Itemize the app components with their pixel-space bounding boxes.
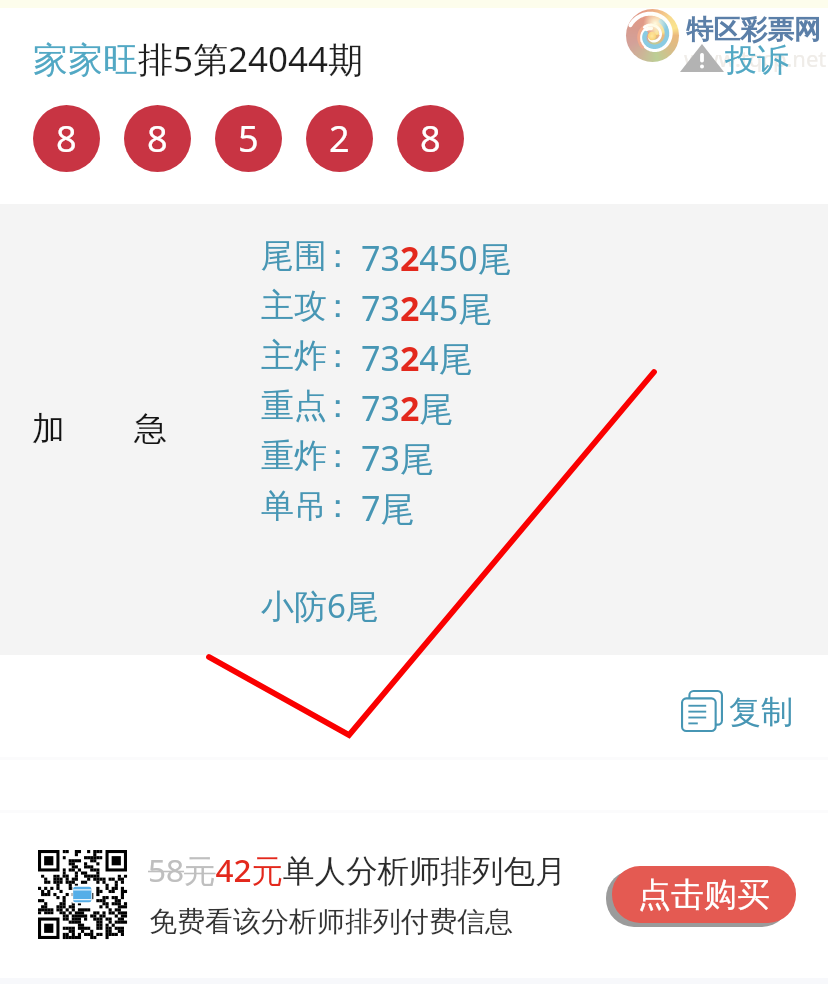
button[interactable]: 2 — [306, 105, 373, 172]
staticText: 5 — [238, 114, 259, 163]
button[interactable]: 8 — [124, 105, 191, 172]
staticText: 投诉 — [725, 40, 789, 78]
staticText: 73尾 — [361, 435, 434, 481]
button[interactable]: 5 — [215, 105, 282, 172]
staticText: www.tqcp.net — [684, 43, 827, 73]
staticText: 732尾 — [361, 385, 454, 431]
staticText: 732450尾 — [361, 235, 512, 281]
staticText: 加 — [32, 408, 65, 450]
other: 扫码二维码 — [38, 850, 127, 939]
staticText: 特区彩票网 — [686, 13, 821, 47]
staticText: ： — [321, 485, 354, 527]
staticText: ： — [321, 235, 354, 277]
staticText: 重点 — [261, 385, 327, 427]
button[interactable]: 8 — [397, 105, 464, 172]
staticText: 8 — [56, 114, 77, 163]
button[interactable]: 复制 — [661, 678, 813, 746]
staticText: 家家旺排5第24044期 — [33, 35, 364, 83]
staticText: 7324尾 — [361, 335, 473, 381]
staticText: 免费看该分析师排列付费信息 — [149, 904, 513, 939]
staticText: 复制 — [729, 692, 793, 732]
staticText: 7尾 — [361, 485, 415, 531]
staticText: 小防6尾 — [261, 583, 379, 628]
staticText: 主炸 — [261, 335, 327, 377]
staticText: 8 — [420, 114, 441, 163]
staticText: ： — [321, 435, 354, 477]
staticText: 重炸 — [261, 435, 327, 477]
staticText: 尾围 — [261, 235, 327, 277]
staticText: 73245尾 — [361, 285, 493, 331]
staticText: 8 — [147, 114, 168, 163]
staticText: 58元42元单人分析师排列包月 — [148, 848, 567, 891]
staticText: 主攻 — [261, 285, 327, 327]
staticText: ： — [321, 335, 354, 377]
button[interactable]: 投诉 — [678, 40, 793, 78]
staticText: 急 — [134, 408, 167, 450]
staticText: 单吊 — [261, 485, 327, 527]
button[interactable]: 扫码二维码 — [0, 813, 828, 978]
staticText: ： — [321, 285, 354, 327]
staticText: 点击购买 — [638, 874, 770, 916]
button[interactable]: 8 — [33, 105, 100, 172]
staticText: 2 — [329, 114, 350, 163]
staticText: ： — [321, 385, 354, 427]
button[interactable]: 点击购买 — [612, 866, 796, 923]
